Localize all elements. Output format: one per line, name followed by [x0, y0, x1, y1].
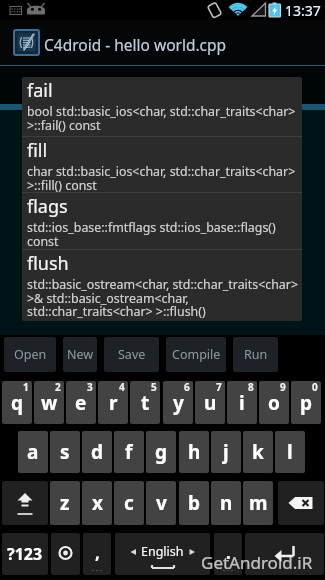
button[interactable]: i	[227, 381, 257, 424]
button[interactable]: ,	[83, 533, 111, 575]
staticText: a	[27, 439, 39, 465]
staticText: 5	[151, 381, 157, 394]
button[interactable]: a	[18, 431, 48, 473]
button[interactable]: fill	[22, 137, 302, 192]
staticText: ,	[95, 541, 100, 564]
staticText: 3	[87, 381, 93, 394]
button[interactable]: English	[115, 533, 210, 575]
staticText: Save	[118, 346, 146, 363]
staticText: English	[141, 543, 184, 560]
staticText: k	[252, 439, 264, 465]
button[interactable]: l	[275, 431, 305, 473]
button[interactable]: Run	[233, 337, 278, 372]
staticText: 9	[280, 381, 286, 394]
staticText: std::ios_base::fmtflags std::ios_base::f…	[27, 219, 276, 249]
button[interactable]: j	[211, 431, 241, 473]
button[interactable]: w	[34, 381, 64, 424]
button[interactable]: .	[214, 533, 242, 575]
button[interactable]: p	[291, 381, 321, 424]
button[interactable]: Settings	[51, 533, 80, 575]
staticText: 13:37	[285, 1, 321, 20]
button[interactable]: Backspace	[278, 481, 324, 525]
staticText: Compile	[172, 346, 221, 363]
button[interactable]: k	[243, 431, 273, 473]
staticText: C4droid - hello world.cpp	[44, 34, 227, 55]
button[interactable]: y	[163, 381, 193, 424]
staticText: 1	[23, 381, 29, 394]
staticText: s	[60, 439, 70, 465]
button[interactable]: Open	[4, 337, 56, 372]
button[interactable]: f	[114, 431, 144, 473]
staticText: fill	[27, 138, 48, 163]
button[interactable]: Save	[104, 337, 159, 372]
staticText: p	[300, 390, 313, 416]
button[interactable]: m	[243, 481, 273, 525]
button[interactable]: flush	[22, 250, 302, 320]
button[interactable]: b	[179, 481, 209, 525]
staticText: y	[173, 390, 184, 416]
button[interactable]: ?123	[2, 533, 48, 575]
button[interactable]: v	[146, 481, 176, 525]
staticText: flush	[27, 251, 69, 276]
staticText: 0	[312, 381, 318, 394]
staticText: bool std::basic_ios<char, std::char_trai…	[27, 103, 296, 133]
staticText: w	[41, 390, 58, 416]
staticText: 7	[216, 381, 222, 394]
button[interactable]: u	[195, 381, 225, 424]
staticText: b	[188, 490, 201, 516]
staticText: v	[156, 490, 167, 516]
staticText: r	[109, 390, 118, 416]
button[interactable]: c	[114, 481, 144, 525]
button[interactable]: s	[50, 431, 80, 473]
staticText: e	[75, 390, 87, 416]
staticText: u	[204, 390, 217, 416]
staticText: Open	[14, 346, 47, 363]
staticText: GetAndroid.iR	[201, 551, 313, 574]
staticText: flags	[27, 194, 68, 219]
button[interactable]: e	[66, 381, 96, 424]
staticText: f	[125, 439, 133, 465]
button[interactable]: q	[2, 381, 32, 424]
button[interactable]: flags	[22, 193, 302, 249]
staticText: 4	[119, 381, 125, 394]
staticText: j	[223, 439, 229, 465]
button[interactable]: Shift	[2, 481, 48, 525]
staticText: o	[268, 390, 280, 416]
staticText: .	[226, 541, 231, 564]
staticText: z	[60, 490, 70, 516]
staticText: Run	[244, 346, 268, 363]
staticText: 2	[55, 381, 61, 394]
staticText: i	[239, 390, 245, 416]
button[interactable]: New	[63, 337, 97, 372]
button[interactable]: Compile	[166, 337, 226, 372]
other: Settings	[51, 533, 80, 575]
staticText: x	[92, 490, 103, 516]
staticText: char std::basic_ios<char, std::char_trai…	[27, 163, 296, 192]
staticText: q	[11, 390, 24, 416]
staticText: fail	[27, 78, 53, 103]
other: Enter	[245, 533, 324, 575]
button[interactable]: n	[211, 481, 241, 525]
staticText: ?123	[7, 543, 43, 565]
button[interactable]: fail	[22, 77, 302, 136]
staticText: g	[155, 439, 168, 465]
staticText: h	[188, 439, 201, 465]
button[interactable]: g	[146, 431, 176, 473]
button[interactable]: Enter	[245, 533, 324, 575]
staticText: c	[124, 490, 134, 516]
staticText: std::basic_ostream<char, std::char_trait…	[27, 276, 299, 319]
button[interactable]: d	[82, 431, 112, 473]
button[interactable]: t	[130, 381, 160, 424]
staticText: 8	[248, 381, 254, 394]
button[interactable]: r	[98, 381, 128, 424]
button[interactable]: h	[179, 431, 209, 473]
staticText: 6	[184, 381, 190, 394]
staticText: New	[67, 346, 94, 363]
button[interactable]: x	[82, 481, 112, 525]
other: Shift	[2, 481, 48, 525]
staticText: d	[91, 439, 104, 465]
button[interactable]: z	[50, 481, 80, 525]
staticText: t	[141, 390, 150, 416]
button[interactable]: o	[259, 381, 289, 424]
other: Backspace	[278, 481, 324, 525]
